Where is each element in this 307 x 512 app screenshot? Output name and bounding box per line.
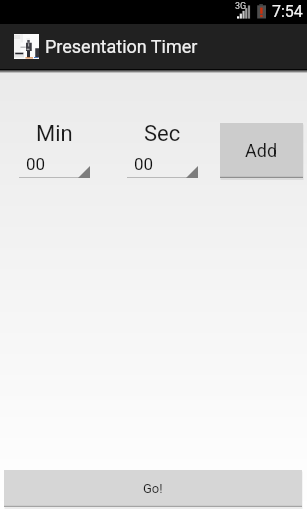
staticText: 3G (235, 1, 247, 12)
staticText: Presentation Timer (45, 36, 198, 57)
staticText: Go! (143, 481, 163, 496)
staticText: 7:54 (272, 2, 303, 21)
button[interactable]: 00 (19, 152, 90, 178)
button[interactable]: 00 (127, 152, 198, 178)
button[interactable]: Go! (4, 470, 302, 507)
button[interactable]: App icon (0, 24, 307, 69)
staticText: 00 (26, 154, 46, 174)
staticText: Add (245, 140, 278, 161)
other: Battery low (256, 4, 268, 20)
other: Signal strength (237, 4, 252, 20)
staticText: 00 (134, 154, 154, 174)
staticText: Sec (144, 121, 181, 147)
staticText: Min (36, 121, 73, 147)
other: App icon (14, 34, 39, 59)
button[interactable]: Add (220, 123, 303, 178)
